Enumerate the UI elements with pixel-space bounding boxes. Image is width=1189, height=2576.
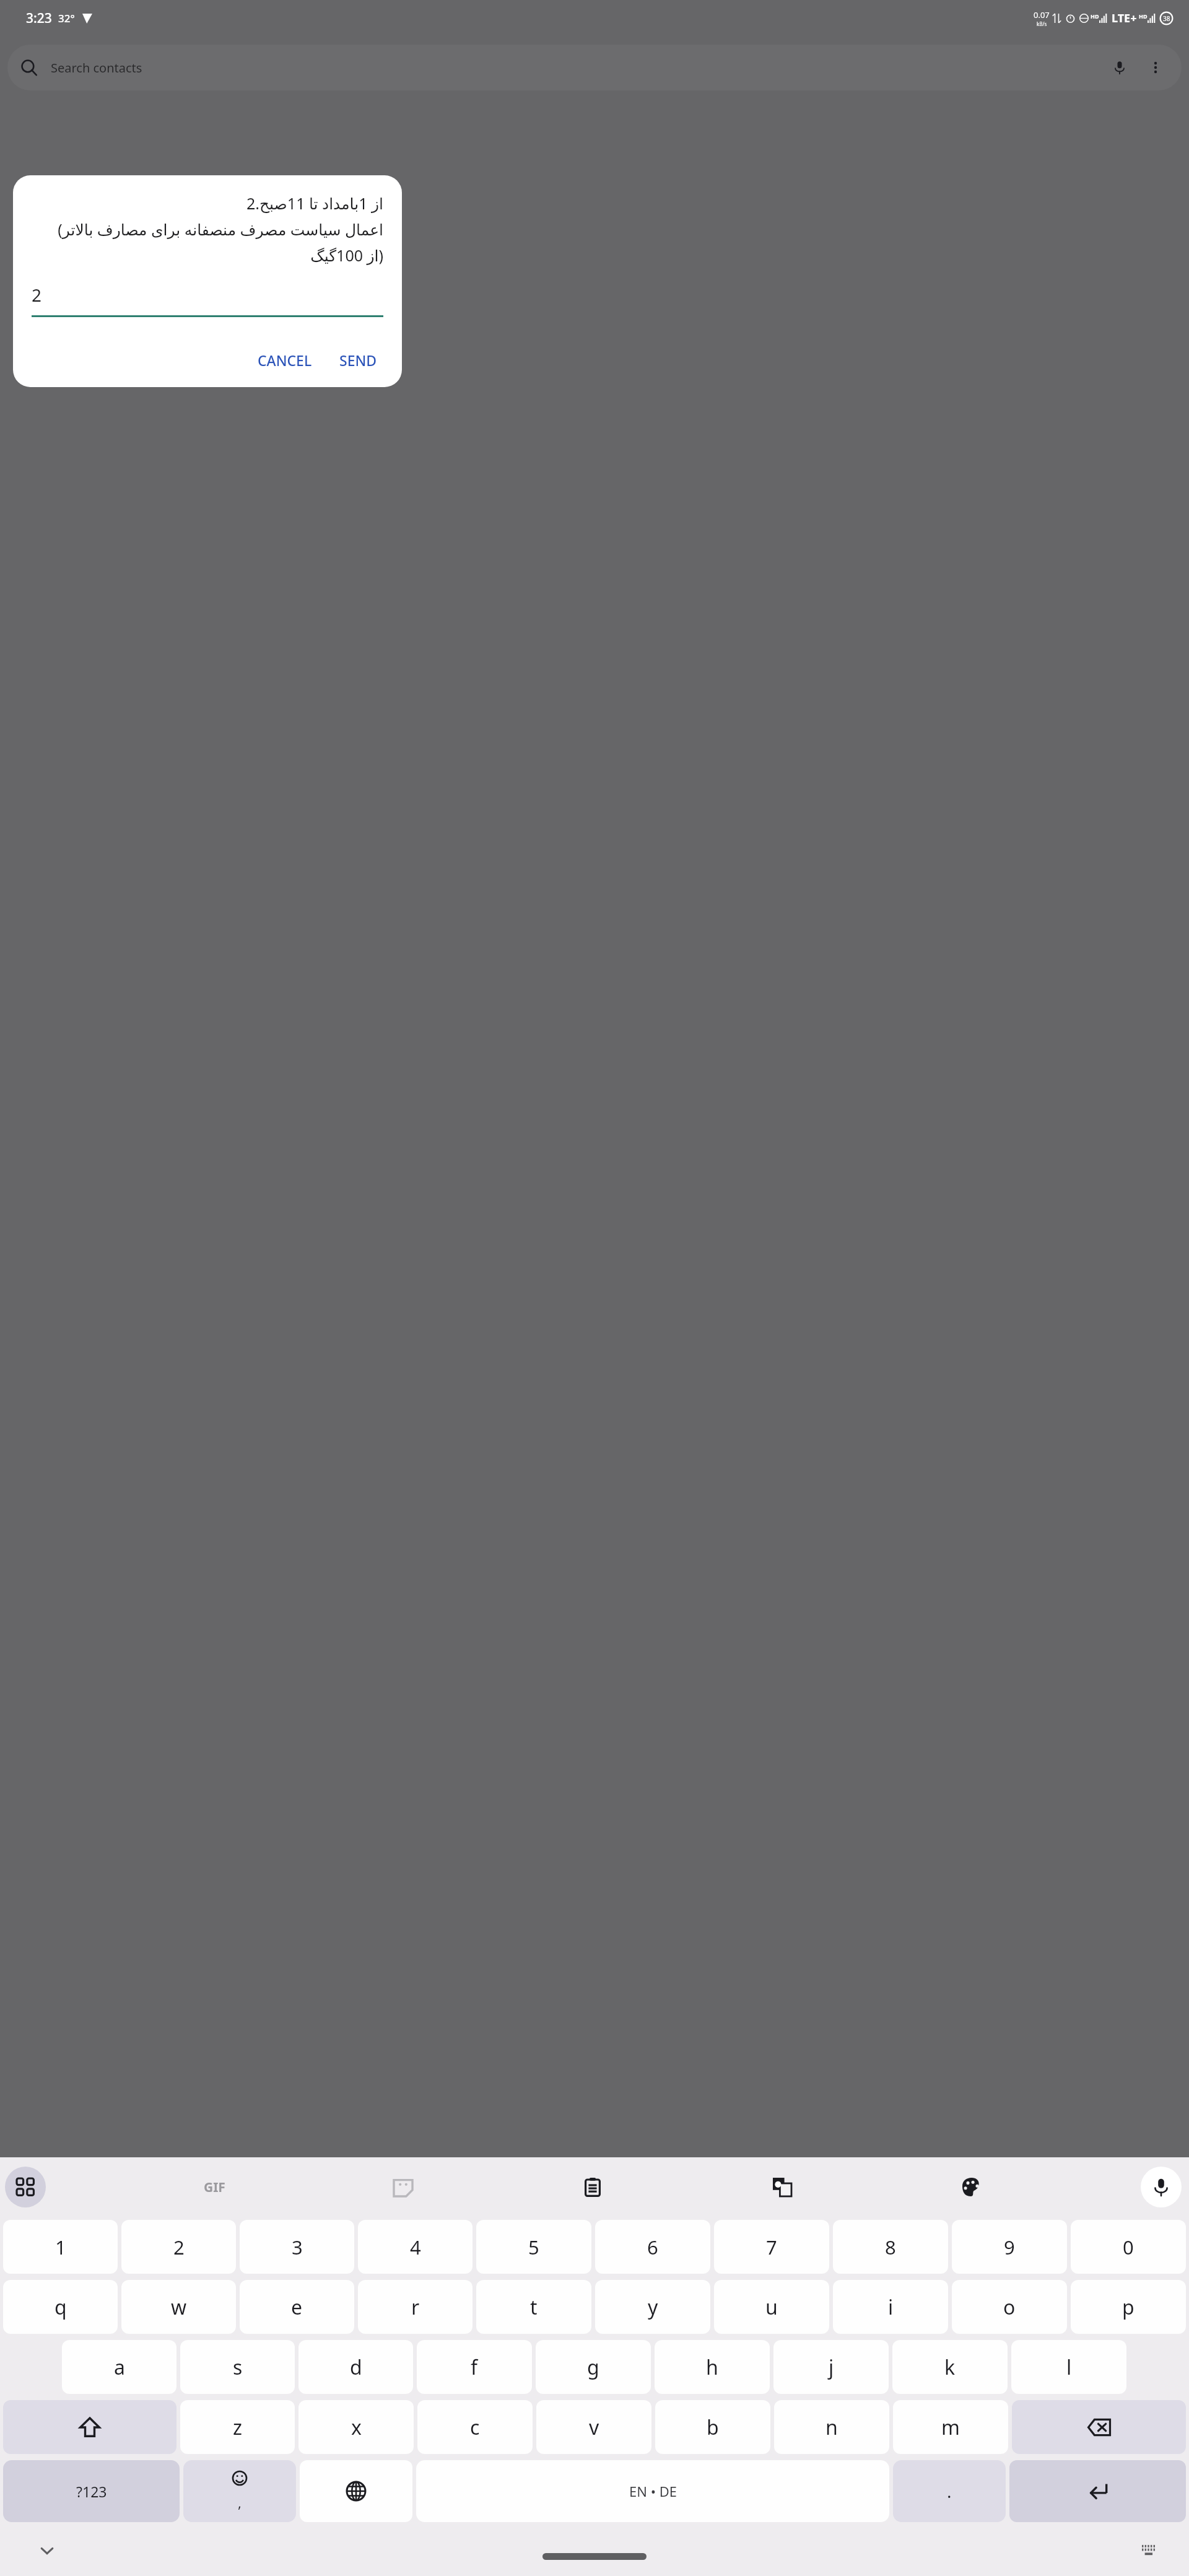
- button[interactable]: GIF: [194, 2167, 235, 2207]
- staticText: 32°: [58, 11, 75, 25]
- button[interactable]: j: [773, 2340, 889, 2394]
- button[interactable]: 8: [833, 2220, 948, 2274]
- staticText: 2.از 1بامداد تا 11صبح (اعمال سیاست مصرف …: [32, 193, 383, 266]
- button[interactable]: c: [417, 2400, 533, 2454]
- staticText: u: [765, 2294, 778, 2321]
- button[interactable]: 4: [358, 2220, 473, 2274]
- button[interactable]: x: [298, 2400, 414, 2454]
- staticText: LTE+: [1112, 11, 1137, 26]
- button[interactable]: Theme: [951, 2167, 992, 2207]
- button[interactable]: m: [893, 2400, 1008, 2454]
- staticText: Calls you make will show: [0, 2344, 1189, 2365]
- button[interactable]: y: [595, 2280, 710, 2334]
- button[interactable]: f: [417, 2340, 532, 2394]
- staticText: 2: [32, 283, 42, 307]
- staticText: HD: [1091, 12, 1099, 20]
- button[interactable]: p: [1071, 2280, 1186, 2334]
- staticText: 1: [55, 2234, 66, 2260]
- button[interactable]: 7: [714, 2220, 829, 2274]
- staticText: m: [941, 2414, 960, 2441]
- staticText: r: [411, 2294, 420, 2321]
- button[interactable]: 2: [121, 2220, 236, 2274]
- staticText: .: [947, 2479, 952, 2503]
- staticText: kB/s: [1037, 20, 1047, 27]
- button[interactable]: i: [833, 2280, 948, 2334]
- button[interactable]: a: [62, 2340, 176, 2394]
- staticText: 3: [292, 2234, 303, 2260]
- button[interactable]: z: [180, 2400, 295, 2454]
- button[interactable]: u: [714, 2280, 829, 2334]
- staticText: ,: [238, 2493, 242, 2512]
- staticText: l: [1066, 2354, 1072, 2381]
- staticText: p: [1122, 2294, 1135, 2321]
- button[interactable]: Translate: [762, 2167, 803, 2207]
- button[interactable]: Shift: [3, 2400, 176, 2454]
- button[interactable]: 0: [1071, 2220, 1186, 2274]
- button[interactable]: Toolbar: [5, 2167, 46, 2207]
- staticText: o: [1003, 2294, 1016, 2321]
- button[interactable]: EN • DE: [416, 2460, 889, 2522]
- staticText: 7: [766, 2234, 777, 2260]
- staticText: h: [706, 2354, 718, 2381]
- staticText: 4: [410, 2234, 421, 2260]
- staticText: g: [587, 2354, 599, 2381]
- staticText: 0.07: [1034, 9, 1050, 20]
- staticText: 5: [528, 2234, 539, 2260]
- button[interactable]: Change language: [300, 2460, 412, 2522]
- staticText: SEND: [339, 351, 377, 370]
- button[interactable]: Search contacts: [7, 45, 1182, 90]
- button[interactable]: r: [358, 2280, 473, 2334]
- button[interactable]: Enter: [1009, 2460, 1186, 2522]
- button[interactable]: h: [655, 2340, 770, 2394]
- button[interactable]: t: [476, 2280, 591, 2334]
- staticText: x: [351, 2414, 362, 2441]
- button[interactable]: n: [774, 2400, 889, 2454]
- button[interactable]: 3: [240, 2220, 354, 2274]
- button[interactable]: 2: [32, 283, 383, 317]
- staticText: HD: [1139, 12, 1148, 20]
- button[interactable]: CANCEL: [250, 343, 320, 377]
- button[interactable]: s: [180, 2340, 295, 2394]
- button[interactable]: Voice input: [1141, 2167, 1182, 2207]
- button[interactable]: .: [893, 2460, 1006, 2522]
- staticText: 2: [173, 2234, 185, 2260]
- button[interactable]: 5: [476, 2220, 591, 2274]
- button[interactable]: g: [536, 2340, 651, 2394]
- staticText: EN • DE: [629, 2482, 677, 2500]
- button[interactable]: Emoji: [183, 2460, 296, 2522]
- staticText: e: [291, 2294, 303, 2321]
- button[interactable]: o: [952, 2280, 1067, 2334]
- staticText: v: [589, 2414, 599, 2441]
- staticText: c: [470, 2414, 480, 2441]
- staticText: Search contacts: [51, 59, 142, 76]
- button[interactable]: b: [655, 2400, 770, 2454]
- button[interactable]: Hide keyboard: [33, 2537, 61, 2564]
- staticText: GIF: [204, 2178, 225, 2196]
- button[interactable]: 1: [3, 2220, 118, 2274]
- staticText: t: [530, 2294, 538, 2321]
- button[interactable]: w: [121, 2280, 236, 2334]
- button[interactable]: SEND: [333, 343, 383, 377]
- button[interactable]: v: [536, 2400, 651, 2454]
- button[interactable]: ?123: [3, 2460, 180, 2522]
- button[interactable]: 9: [952, 2220, 1067, 2274]
- staticText: 9: [1004, 2234, 1015, 2260]
- button[interactable]: Backspace: [1012, 2400, 1186, 2454]
- staticText: 3:23: [26, 9, 52, 27]
- button[interactable]: 6: [595, 2220, 710, 2274]
- button[interactable]: More options: [1143, 55, 1168, 80]
- button[interactable]: Switch keyboard: [1136, 2537, 1163, 2564]
- staticText: CANCEL: [258, 351, 312, 370]
- button[interactable]: d: [298, 2340, 413, 2394]
- button[interactable]: q: [3, 2280, 118, 2334]
- button[interactable]: Voice search: [1107, 55, 1132, 80]
- button[interactable]: l: [1011, 2340, 1126, 2394]
- button[interactable]: e: [240, 2280, 354, 2334]
- staticText: w: [171, 2294, 187, 2321]
- staticText: 6: [647, 2234, 658, 2260]
- button[interactable]: k: [892, 2340, 1008, 2394]
- button[interactable]: Clipboard: [572, 2167, 613, 2207]
- staticText: a: [114, 2354, 125, 2381]
- button[interactable]: Stickers: [383, 2167, 424, 2207]
- staticText: 38: [1163, 14, 1170, 23]
